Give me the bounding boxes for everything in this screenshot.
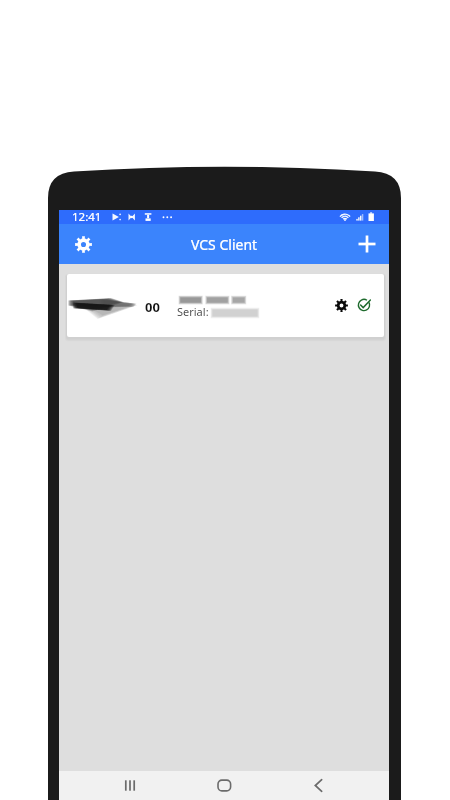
button[interactable]: Connected <box>353 294 375 316</box>
button[interactable]: Add <box>354 231 380 257</box>
staticText: 00 <box>145 298 160 316</box>
staticText: Serial: <box>177 304 209 319</box>
staticText: 12:41 <box>72 209 102 223</box>
button[interactable]: Device settings <box>330 294 352 316</box>
button[interactable]: 00 <box>67 274 384 337</box>
staticText: VCS Client <box>191 235 258 254</box>
button[interactable]: Settings <box>70 231 96 257</box>
